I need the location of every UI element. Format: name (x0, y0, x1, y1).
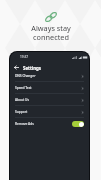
staticText: Support (15, 110, 28, 114)
button[interactable]: About Us (10, 94, 89, 106)
staticText: Settings (23, 65, 41, 71)
button[interactable]: Support (10, 106, 89, 118)
button[interactable]: DNS Changer (10, 70, 89, 82)
staticText: Speed Test (15, 86, 32, 90)
staticText: Remove Ads (15, 122, 34, 126)
button[interactable]: Speed Test (10, 82, 89, 94)
staticText: About Us (15, 98, 30, 102)
other: Link (45, 12, 57, 22)
staticText: Always stay connected (31, 23, 71, 42)
staticText: 19:37 (20, 55, 29, 59)
button[interactable]: Back (12, 63, 21, 72)
staticText: DNS Changer (15, 74, 36, 78)
button[interactable]: Remove Ads (10, 118, 89, 130)
